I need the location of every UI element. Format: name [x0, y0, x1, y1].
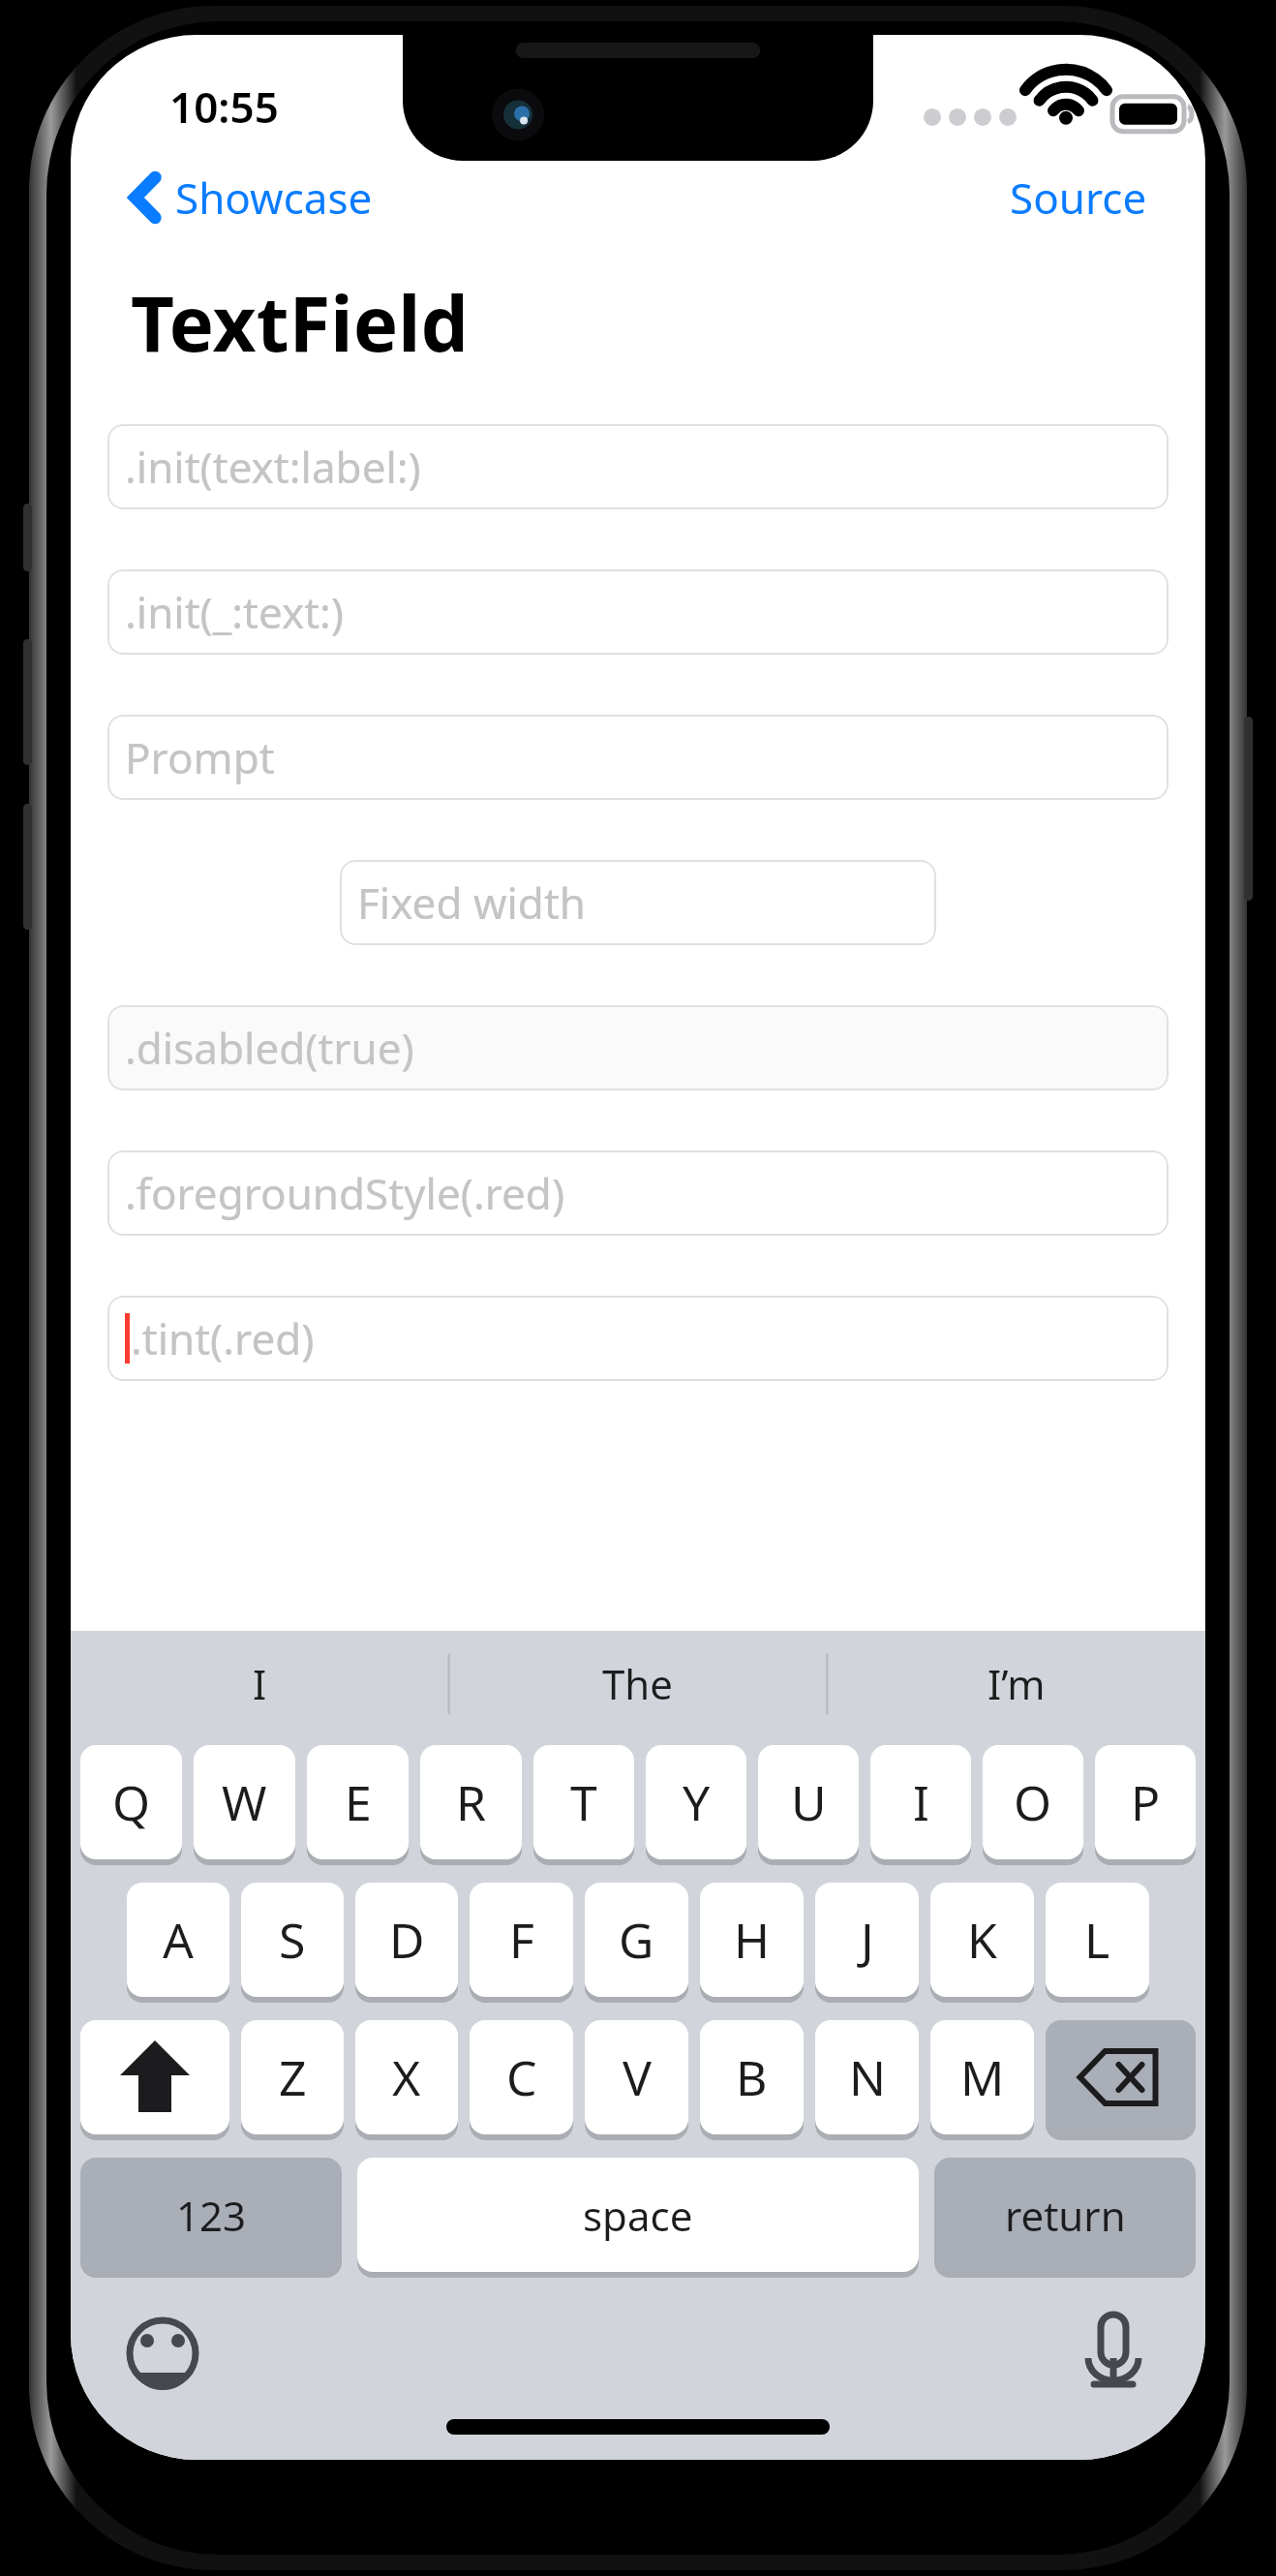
button[interactable]: X [355, 2020, 458, 2134]
staticText: Showcase [175, 169, 373, 227]
button[interactable]: .tint(.red) [107, 1296, 1169, 1381]
button[interactable]: .foregroundStyle(.red) [107, 1150, 1169, 1236]
staticText: D [389, 1907, 425, 1973]
button[interactable]: V [585, 2020, 688, 2134]
button[interactable]: U [758, 1745, 859, 1859]
button[interactable]: Prompt [107, 715, 1169, 800]
button[interactable]: B [700, 2020, 804, 2134]
staticText: M [960, 2044, 1005, 2110]
button[interactable]: W [194, 1745, 295, 1859]
button[interactable]: I’m [827, 1631, 1205, 1735]
staticText: .disabled(true) [125, 1019, 414, 1077]
button[interactable]: I [71, 1631, 448, 1735]
staticText: .init(text:label:) [125, 438, 421, 496]
button[interactable]: Y [646, 1745, 746, 1859]
staticText: H [734, 1907, 771, 1973]
staticText: C [506, 2044, 537, 2110]
button[interactable]: O [983, 1745, 1083, 1859]
staticText: .tint(.red) [131, 1309, 315, 1367]
staticText: P [1131, 1769, 1161, 1835]
button[interactable]: Emoji keyboard [109, 2305, 216, 2402]
button[interactable]: Source [996, 151, 1161, 244]
staticText: W [222, 1769, 267, 1835]
staticText: I’m [987, 1656, 1046, 1711]
staticText: return [1005, 2188, 1126, 2243]
button[interactable]: The [448, 1631, 827, 1735]
staticText: I [913, 1769, 929, 1835]
button[interactable]: H [700, 1883, 804, 1997]
staticText: R [456, 1769, 487, 1835]
staticText: E [345, 1769, 372, 1835]
button[interactable]: 123 [80, 2158, 342, 2272]
button[interactable]: return [934, 2158, 1196, 2272]
button[interactable]: Fixed width [340, 860, 936, 945]
button[interactable]: P [1095, 1745, 1196, 1859]
staticText: G [619, 1907, 654, 1973]
staticText: B [736, 2044, 768, 2110]
button[interactable]: D [355, 1883, 458, 1997]
button[interactable]: Showcase [115, 151, 386, 244]
staticText: I [253, 1656, 267, 1711]
staticText: space [583, 2188, 693, 2243]
staticText: J [861, 1907, 874, 1973]
staticText: V [623, 2044, 652, 2110]
button[interactable]: A [127, 1883, 229, 1997]
button[interactable]: Z [241, 2020, 344, 2134]
button[interactable]: R [420, 1745, 522, 1859]
button[interactable]: Dictation [1060, 2305, 1167, 2402]
staticText: Z [279, 2044, 307, 2110]
button[interactable]: space [357, 2158, 919, 2272]
button[interactable]: Shift [80, 2020, 229, 2134]
staticText: U [791, 1769, 827, 1835]
button[interactable]: .disabled(true) [107, 1005, 1169, 1090]
button[interactable]: C [470, 2020, 573, 2134]
staticText: K [967, 1907, 997, 1973]
button[interactable]: T [533, 1745, 634, 1859]
staticText: F [509, 1907, 534, 1973]
staticText: L [1084, 1907, 1110, 1973]
button[interactable]: K [930, 1883, 1034, 1997]
button[interactable]: M [930, 2020, 1034, 2134]
button[interactable]: Backspace [1046, 2020, 1196, 2134]
staticText: X [392, 2044, 421, 2110]
staticText: Q [112, 1769, 151, 1835]
button[interactable]: .init(text:label:) [107, 424, 1169, 509]
button[interactable]: G [585, 1883, 688, 1997]
staticText: Prompt [125, 728, 275, 786]
button[interactable]: N [815, 2020, 919, 2134]
staticText: Y [683, 1769, 711, 1835]
staticText: The [602, 1656, 673, 1711]
staticText: A [163, 1907, 194, 1973]
button[interactable]: S [241, 1883, 344, 1997]
staticText: .foregroundStyle(.red) [125, 1164, 565, 1222]
button[interactable]: L [1046, 1883, 1149, 1997]
button[interactable]: F [470, 1883, 573, 1997]
staticText: Source [1010, 169, 1147, 227]
staticText: S [279, 1907, 306, 1973]
staticText: O [1014, 1769, 1052, 1835]
button[interactable]: Q [80, 1745, 182, 1859]
button[interactable]: .init(_:text:) [107, 569, 1169, 655]
staticText: Fixed width [357, 874, 586, 932]
button[interactable]: E [307, 1745, 409, 1859]
staticText: T [570, 1769, 597, 1835]
button[interactable]: J [815, 1883, 919, 1997]
staticText: N [849, 2044, 886, 2110]
staticText: TextField [131, 271, 469, 374]
staticText: 10:55 [169, 77, 279, 136]
staticText: .init(_:text:) [125, 583, 345, 641]
staticText: 123 [176, 2188, 247, 2243]
button[interactable]: I [870, 1745, 971, 1859]
